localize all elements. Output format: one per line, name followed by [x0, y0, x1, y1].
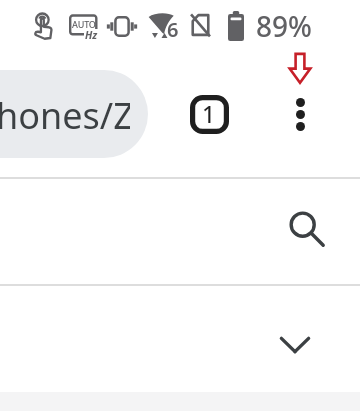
- button[interactable]: Expand: [0, 286, 360, 391]
- staticText: 1: [202, 98, 216, 129]
- staticText: 89%: [256, 7, 312, 45]
- other: Search: [289, 211, 325, 247]
- staticText: Hz: [85, 28, 98, 42]
- button[interactable]: More options: [280, 90, 320, 139]
- button[interactable]: Tabs, 1 open: [184, 89, 234, 139]
- staticText: AUTO: [72, 18, 96, 30]
- other: Expand: [278, 335, 312, 355]
- button[interactable]: hones/Zip: [0, 70, 148, 158]
- staticText: hones/Zip: [0, 91, 130, 140]
- button[interactable]: Search: [0, 179, 360, 284]
- staticText: 6: [167, 16, 179, 41]
